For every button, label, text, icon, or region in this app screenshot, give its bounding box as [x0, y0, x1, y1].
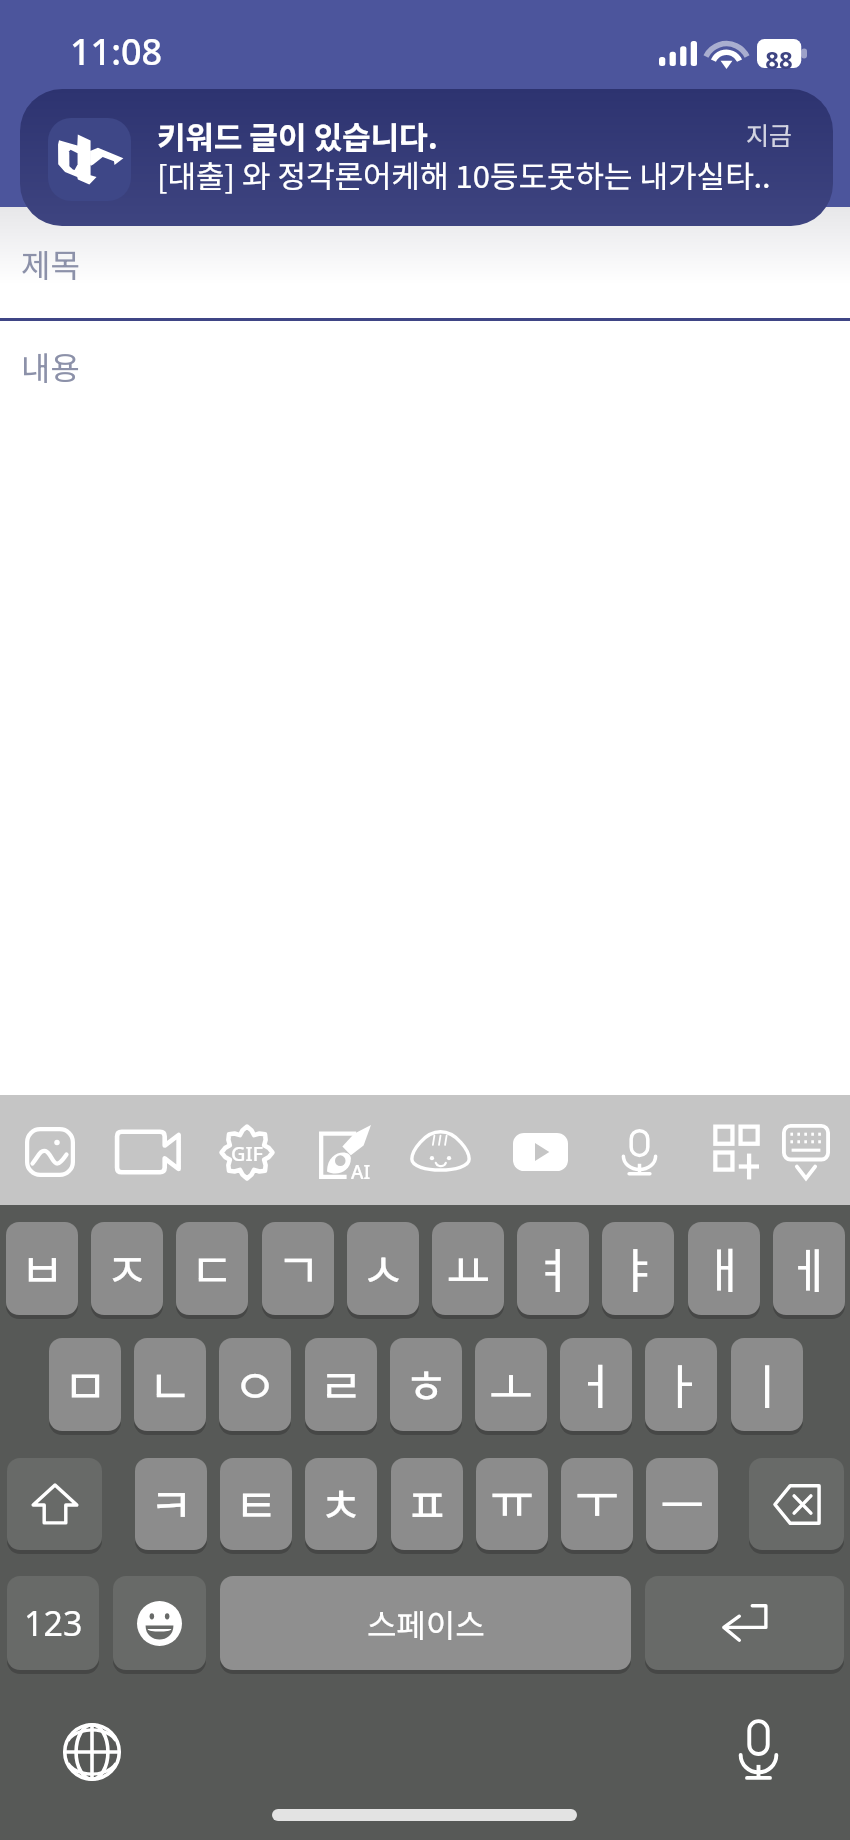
staticText: ㅊ	[319, 1467, 364, 1537]
button[interactable]: 키워드 글이 있습니다.	[20, 89, 833, 226]
staticText: ㅡ	[660, 1467, 705, 1537]
button[interactable]: ㅊ	[305, 1458, 377, 1550]
button[interactable]: Shortcuts	[694, 1110, 778, 1194]
staticText: ㅋ	[149, 1467, 194, 1537]
button[interactable]: Character	[398, 1110, 482, 1194]
staticText: ㅣ	[745, 1348, 790, 1418]
button[interactable]: Backspace	[749, 1458, 844, 1550]
staticText: 내용	[21, 343, 80, 389]
button[interactable]: ㄴ	[134, 1338, 206, 1431]
staticText: ㅗ	[489, 1350, 534, 1420]
button[interactable]: Voice input	[597, 1110, 681, 1194]
button[interactable]: 123	[7, 1576, 99, 1670]
staticText: 11:08	[70, 27, 163, 76]
staticText: ㅍ	[405, 1467, 450, 1537]
button[interactable]: ㅋ	[135, 1458, 207, 1550]
staticText: ㅌ	[234, 1467, 279, 1537]
staticText: 지금	[746, 116, 793, 152]
button[interactable]: ㅂ	[6, 1222, 78, 1315]
button[interactable]: ㄷ	[176, 1222, 248, 1315]
button[interactable]: YouTube	[498, 1110, 582, 1194]
button[interactable]: ㅑ	[602, 1222, 674, 1315]
button[interactable]: 스페이스	[220, 1576, 631, 1670]
staticText: ㅁ	[63, 1348, 108, 1418]
button[interactable]: ㅡ	[646, 1458, 718, 1550]
staticText: 제목	[21, 240, 80, 286]
staticText: ㅛ	[446, 1233, 491, 1303]
staticText: ㄷ	[190, 1232, 235, 1302]
staticText: ㅈ	[105, 1232, 150, 1302]
staticText: ㅎ	[404, 1348, 449, 1418]
button[interactable]: Emoji	[113, 1576, 206, 1670]
staticText: 키워드 글이 있습니다.	[157, 113, 438, 158]
button[interactable]: ㅓ	[560, 1338, 632, 1431]
button[interactable]: ㄱ	[262, 1222, 334, 1315]
button[interactable]: ㅁ	[49, 1338, 121, 1431]
button[interactable]: Enter	[645, 1576, 844, 1670]
button[interactable]: ㅈ	[91, 1222, 163, 1315]
button[interactable]: ㅅ	[347, 1222, 419, 1315]
button[interactable]: ㅌ	[220, 1458, 292, 1550]
staticText: ㄹ	[319, 1348, 364, 1418]
button[interactable]: ㅛ	[432, 1222, 504, 1315]
staticText: 88	[757, 43, 801, 76]
staticText: ㅐ	[702, 1232, 747, 1302]
button[interactable]: ㅜ	[561, 1458, 633, 1550]
button[interactable]: Sticker	[8, 1110, 92, 1194]
staticText: ㅠ	[490, 1463, 535, 1533]
button[interactable]: Voice input	[720, 1712, 796, 1788]
staticText: ㅂ	[20, 1232, 65, 1302]
staticText: ㅓ	[574, 1348, 619, 1418]
button[interactable]: Hide keyboard	[764, 1110, 848, 1194]
button[interactable]: GIF	[205, 1110, 289, 1194]
button[interactable]: ㅏ	[645, 1338, 717, 1431]
staticText: GIF	[231, 1140, 264, 1167]
staticText: 스페이스	[367, 1600, 485, 1646]
staticText: [대출] 와 정각론어케해 10등도못하는 내가실타..	[157, 152, 817, 197]
button[interactable]: ㅣ	[731, 1338, 803, 1431]
button[interactable]: ㅐ	[688, 1222, 760, 1315]
button[interactable]: ㅍ	[391, 1458, 463, 1550]
button[interactable]: ㅇ	[219, 1338, 291, 1431]
button[interactable]: Shift	[7, 1458, 102, 1550]
staticText: ㅑ	[616, 1232, 661, 1302]
button[interactable]: ㅎ	[390, 1338, 462, 1431]
button[interactable]: AI draw	[302, 1110, 386, 1194]
staticText: 123	[24, 1600, 83, 1646]
staticText: ㅅ	[361, 1232, 406, 1302]
button[interactable]: ㅠ	[476, 1458, 548, 1550]
staticText: ㅏ	[659, 1348, 704, 1418]
button[interactable]: ㅕ	[517, 1222, 589, 1315]
staticText: ㄴ	[148, 1348, 193, 1418]
staticText: AI	[351, 1159, 371, 1185]
button[interactable]: ㄹ	[305, 1338, 377, 1431]
button[interactable]: ㅔ	[773, 1222, 845, 1315]
button[interactable]: Video	[105, 1110, 189, 1194]
staticText: ㅕ	[531, 1232, 576, 1302]
button[interactable]: ㅗ	[475, 1338, 547, 1431]
staticText: ㅔ	[787, 1232, 832, 1302]
staticText: ㅇ	[233, 1348, 278, 1418]
staticText: ㄱ	[276, 1232, 321, 1302]
button[interactable]: Change language	[54, 1714, 130, 1790]
staticText: ㅜ	[575, 1463, 620, 1533]
